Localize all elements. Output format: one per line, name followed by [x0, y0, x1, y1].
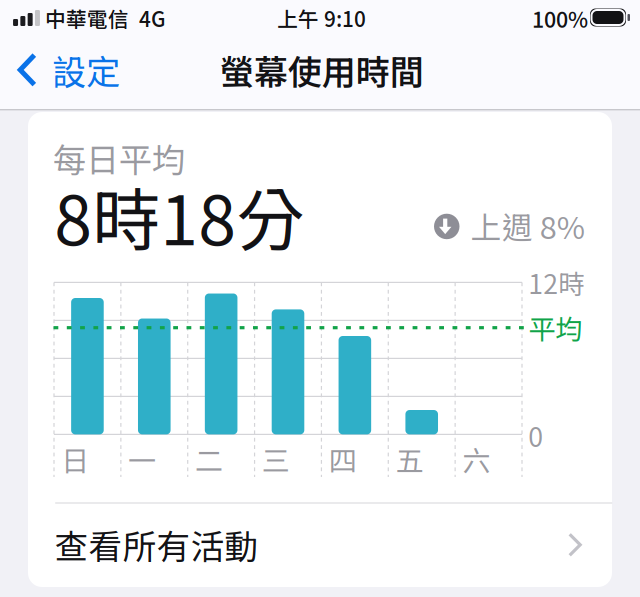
staticText: 上午 9:10	[277, 3, 366, 33]
staticText: 100%	[532, 3, 588, 34]
staticText: 12時	[528, 263, 585, 302]
button[interactable]: 設定	[0, 36, 122, 88]
staticText: 六	[462, 439, 490, 479]
staticText: 二	[195, 439, 223, 479]
staticText: 每日平均	[53, 133, 185, 182]
staticText: 上週 8%	[471, 203, 585, 248]
staticText: 中華電信 4G	[45, 3, 166, 33]
staticText: 一	[128, 439, 156, 479]
staticText: 平均	[528, 308, 582, 347]
staticText: 三	[262, 439, 290, 479]
staticText: 0	[528, 416, 543, 455]
staticText: 日	[61, 439, 89, 479]
staticText: 設定	[52, 45, 120, 94]
staticText: 五	[395, 439, 423, 479]
staticText: 四	[329, 439, 357, 479]
staticText: 查看所有活動	[54, 520, 258, 569]
button[interactable]: 查看所有活動	[28, 502, 612, 586]
staticText: 螢幕使用時間	[220, 45, 424, 94]
staticText: 8時18分	[54, 166, 304, 265]
